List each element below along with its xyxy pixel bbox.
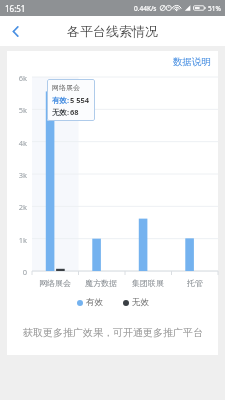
staticText: 0.44K/s — [134, 4, 157, 13]
staticText: 集团联展 — [132, 278, 164, 288]
staticText: 0 — [7, 267, 27, 277]
staticText: 6k — [7, 73, 27, 83]
staticText: 51% — [208, 4, 221, 13]
staticText: 获取更多推广效果，可开通更多推广平台 — [23, 326, 203, 339]
staticText: 68 — [70, 107, 79, 117]
staticText: 5 554 — [70, 95, 90, 105]
staticText: 托管 — [187, 278, 203, 288]
staticText: 无效: — [52, 107, 70, 117]
staticText: 4k — [7, 138, 27, 148]
button[interactable]: 数据说明 — [166, 51, 218, 73]
staticText: 网络展会 — [39, 278, 71, 288]
staticText: 魔方数据 — [85, 278, 117, 288]
staticText: 5k — [7, 105, 27, 115]
staticText: 1k — [7, 235, 27, 245]
staticText: 2k — [7, 202, 27, 212]
button[interactable]: Back — [0, 16, 30, 46]
staticText: 网络展会 — [52, 83, 80, 92]
staticText: 各平台线索情况 — [67, 23, 158, 39]
staticText: 16:51 — [5, 3, 26, 14]
staticText: 3k — [7, 170, 27, 180]
staticText: 有效 — [86, 297, 103, 308]
staticText: 无效 — [132, 297, 149, 308]
staticText: 数据说明 — [173, 56, 211, 68]
staticText: 有效: — [52, 95, 70, 105]
